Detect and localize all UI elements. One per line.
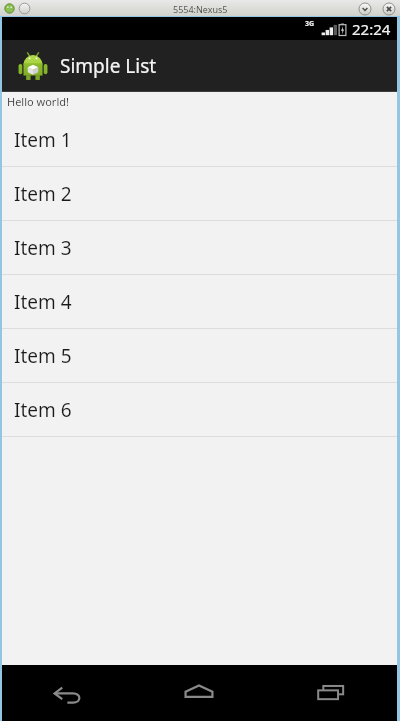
staticText: Item 2 bbox=[14, 181, 72, 207]
staticText: 22:24 bbox=[352, 19, 391, 39]
staticText: 5554:Nexus5 bbox=[173, 3, 228, 15]
staticText: Simple List bbox=[60, 53, 157, 79]
button[interactable]: Item 2 bbox=[2, 167, 397, 221]
button[interactable]: Item 6 bbox=[2, 383, 397, 437]
staticText: Item 6 bbox=[14, 397, 72, 423]
staticText: Hello world! bbox=[7, 94, 69, 109]
button[interactable]: Back bbox=[2, 665, 133, 721]
staticText: Item 4 bbox=[14, 289, 72, 315]
staticText: 3G bbox=[305, 19, 315, 29]
staticText: Item 3 bbox=[14, 235, 72, 261]
button[interactable]: Home bbox=[133, 665, 265, 721]
button[interactable]: Item 3 bbox=[2, 221, 397, 275]
button[interactable]: Minimize window bbox=[358, 2, 372, 16]
button[interactable]: Close window bbox=[382, 2, 396, 16]
button[interactable]: Item 5 bbox=[2, 329, 397, 383]
staticText: Item 5 bbox=[14, 343, 72, 369]
button[interactable]: Recents bbox=[265, 665, 397, 721]
button[interactable]: Item 4 bbox=[2, 275, 397, 329]
button[interactable]: Item 1 bbox=[2, 113, 397, 167]
staticText: Item 1 bbox=[14, 127, 72, 153]
